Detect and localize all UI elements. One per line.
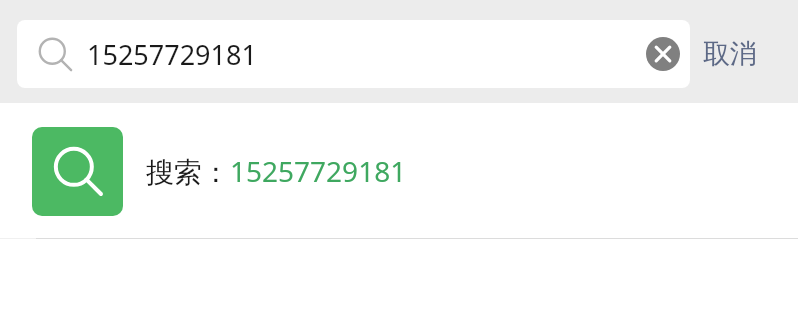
button[interactable]: 搜索：15257729181: [0, 103, 798, 239]
staticText: 15257729181: [87, 36, 257, 73]
button[interactable]: 取消: [703, 20, 783, 88]
button[interactable]: Clear: [646, 37, 680, 71]
button[interactable]: 15257729181: [17, 20, 690, 88]
staticText: 搜索：15257729181: [146, 152, 407, 190]
staticText: 取消: [703, 37, 757, 71]
